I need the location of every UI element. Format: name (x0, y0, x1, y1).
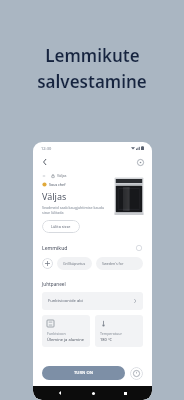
button[interactable]: Info (135, 244, 143, 252)
staticText: TURN ON (74, 370, 93, 376)
button[interactable]: Funktsioon (42, 315, 90, 347)
button[interactable]: Grillküpsetus (57, 257, 92, 270)
button[interactable]: Back (40, 157, 50, 167)
button[interactable]: Temperatuur (95, 315, 143, 347)
button[interactable]: Home (87, 387, 99, 399)
staticText: Lemmikud (42, 245, 68, 252)
staticText: Seadmeid saab kaugjuhtimise kaudu sisse … (42, 205, 105, 215)
button[interactable]: Sweden's for cooking (96, 257, 143, 270)
button[interactable]: Funktsioonide abi (42, 292, 143, 310)
button[interactable]: Settings (135, 157, 145, 167)
staticText: Väljas (57, 173, 67, 178)
staticText: salvestamine (37, 70, 147, 93)
staticText: 12:30 (41, 146, 52, 151)
staticText: Lülita sisse (51, 224, 71, 229)
staticText: Lemmikute (45, 44, 140, 67)
button[interactable]: Timer (130, 367, 143, 380)
button[interactable]: Lülita sisse (42, 220, 80, 233)
staticText: Väljas (42, 190, 67, 202)
staticText: Funktsioon (47, 331, 66, 336)
button[interactable]: Back (54, 387, 66, 399)
button[interactable]: TURN ON (42, 366, 125, 380)
staticText: Ülemine ja alumine (47, 337, 84, 342)
staticText: Juhtpaneel (42, 281, 66, 287)
staticText: Sous chef (49, 182, 66, 187)
staticText: Funktsioonide abi (48, 298, 83, 304)
staticText: Grillküpsetus (63, 261, 86, 266)
button[interactable]: Recents (119, 387, 131, 399)
staticText: 180 °C (100, 337, 113, 342)
staticText: Sweden's for cooking (102, 261, 137, 266)
staticText: Temperatuur (100, 331, 123, 336)
button[interactable]: Add favourite (42, 258, 53, 269)
